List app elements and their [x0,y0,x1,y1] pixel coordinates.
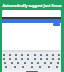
button[interactable] [40,58,42,60]
button[interactable] [31,62,33,64]
button[interactable] [40,54,42,56]
button[interactable] [52,58,54,60]
staticText: Automatically suggest Just Focus [2,3,62,8]
button[interactable] [15,58,17,60]
button[interactable] [50,62,52,64]
button[interactable] [21,54,23,56]
button[interactable] [39,66,41,68]
button[interactable] [48,66,50,68]
button[interactable] [3,54,5,56]
button[interactable] [34,54,36,56]
button[interactable] [17,62,19,64]
button[interactable] [4,62,6,64]
button[interactable] [31,66,33,68]
button[interactable] [46,54,48,56]
button[interactable] [56,66,58,68]
button[interactable] [15,54,17,56]
button[interactable] [57,62,59,64]
button[interactable] [27,54,29,56]
button[interactable] [52,54,54,56]
button[interactable] [24,62,26,64]
button[interactable] [46,58,48,60]
button[interactable] [9,54,11,56]
button[interactable] [27,58,29,60]
button[interactable] [9,58,11,60]
button[interactable] [44,62,46,64]
button[interactable] [3,58,5,60]
button[interactable] [22,66,24,68]
button[interactable] [58,54,60,56]
button[interactable] [14,66,16,68]
button[interactable] [5,66,7,68]
button[interactable] [58,58,60,60]
button[interactable] [37,62,39,64]
button[interactable] [11,62,13,64]
button[interactable] [34,58,36,60]
button[interactable] [21,58,23,60]
